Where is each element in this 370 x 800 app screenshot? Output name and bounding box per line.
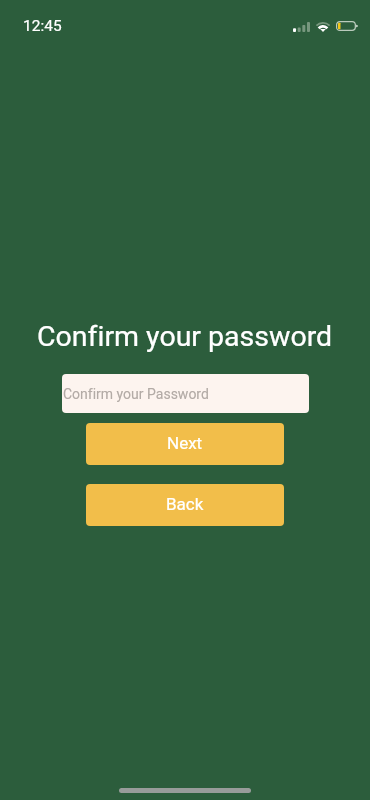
button[interactable]: Confirm your Password — [62, 374, 309, 413]
staticText: Confirm your Password — [63, 386, 209, 402]
staticText: Confirm your password — [37, 320, 333, 353]
staticText: Back — [166, 494, 204, 514]
staticText: 12:45 — [23, 17, 62, 35]
other: Wi-Fi — [316, 22, 330, 32]
other: Cellular signal — [293, 22, 310, 32]
button[interactable]: Back — [86, 484, 284, 526]
button[interactable]: Next — [86, 423, 284, 465]
staticText: Next — [167, 433, 203, 453]
other: Battery low — [336, 21, 358, 31]
